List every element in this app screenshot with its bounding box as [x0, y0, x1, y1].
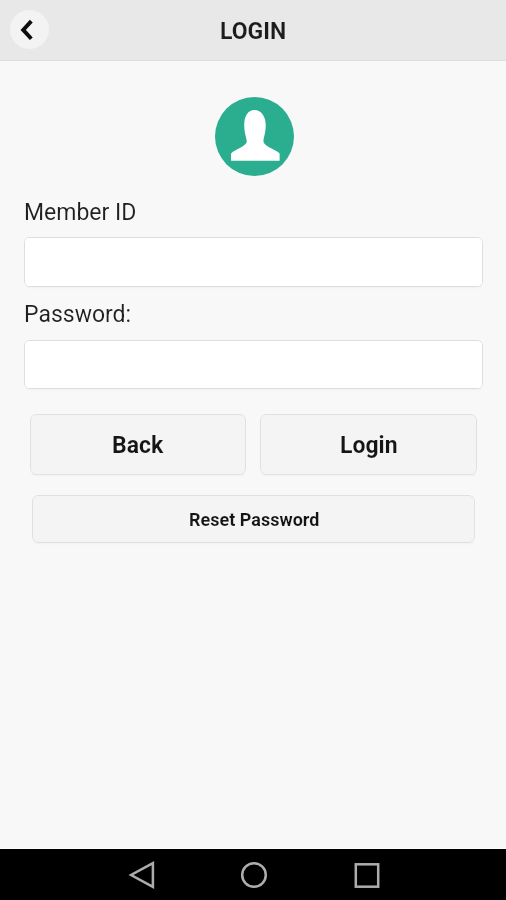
staticText: LOGIN: [220, 18, 287, 45]
staticText: Reset Password: [189, 509, 320, 530]
button[interactable]: Reset Password: [32, 495, 475, 543]
button[interactable]: Login: [260, 414, 477, 475]
button[interactable]: Back: [118, 851, 166, 899]
staticText: Member ID: [24, 199, 137, 226]
staticText: Back: [112, 432, 164, 459]
button[interactable]: Back: [30, 414, 246, 475]
button[interactable]: Back: [10, 10, 49, 49]
staticText: Login: [340, 432, 398, 459]
button[interactable]: Password input: [24, 340, 483, 389]
button[interactable]: Recent apps: [343, 851, 391, 899]
staticText: Password:: [24, 301, 132, 328]
button[interactable]: Member ID input: [24, 237, 483, 287]
button[interactable]: Home: [230, 851, 278, 899]
